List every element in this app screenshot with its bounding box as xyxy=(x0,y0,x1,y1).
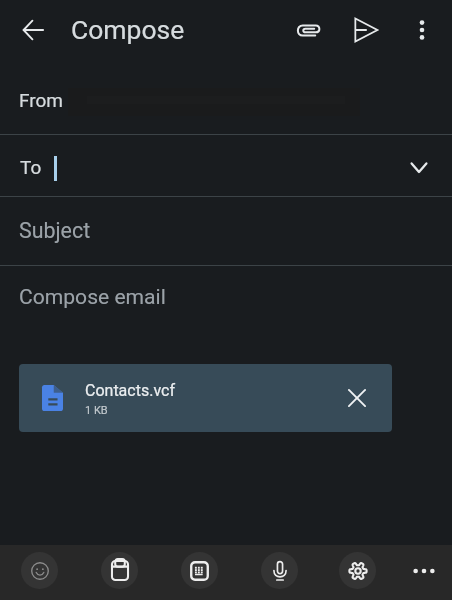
button[interactable]: Send xyxy=(344,8,388,52)
button[interactable]: Switch keyboard xyxy=(181,552,218,589)
staticText: From xyxy=(19,89,64,111)
staticText: Compose email xyxy=(19,284,166,309)
staticText: Contacts.vcf xyxy=(85,381,175,400)
button[interactable] xyxy=(0,60,452,134)
button[interactable]: Emoji xyxy=(21,552,58,589)
button[interactable]: Show Cc and Bcc xyxy=(399,148,439,188)
button[interactable]: Voice input xyxy=(261,552,298,589)
staticText: To xyxy=(20,156,42,178)
button[interactable]: More options xyxy=(400,8,444,52)
button[interactable] xyxy=(0,135,452,196)
button[interactable] xyxy=(0,197,452,265)
button[interactable]: Back xyxy=(12,8,56,52)
button[interactable]: Remove attachment xyxy=(337,378,377,418)
button[interactable]: Settings xyxy=(339,552,376,589)
staticText: Compose xyxy=(71,14,185,45)
staticText: Subject xyxy=(19,218,91,243)
button[interactable]: Attach file xyxy=(287,8,331,52)
button[interactable]: More options xyxy=(404,551,444,591)
button[interactable] xyxy=(0,266,452,545)
staticText: 1 KB xyxy=(85,404,108,417)
button[interactable]: Clipboard xyxy=(101,552,138,589)
button[interactable]: Contacts.vcf xyxy=(19,364,392,432)
